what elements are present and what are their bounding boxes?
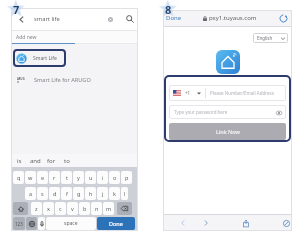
button[interactable]: Done <box>166 14 182 22</box>
button[interactable]: and <box>27 154 43 167</box>
staticText: m <box>106 205 112 212</box>
button[interactable]: is <box>11 154 27 167</box>
button[interactable]: i <box>97 171 108 184</box>
button[interactable]: 123 <box>13 217 25 230</box>
staticText: for <box>47 157 56 165</box>
staticText: h <box>89 190 93 197</box>
staticText: 123 <box>15 221 23 227</box>
staticText: Smart Life for ARUGO <box>34 76 91 84</box>
staticText: f <box>66 190 68 197</box>
staticText: w <box>28 174 33 181</box>
staticText: z <box>35 205 38 212</box>
button[interactable]: Link Now <box>169 123 286 140</box>
staticText: g <box>77 190 81 197</box>
button[interactable]: w <box>25 171 36 184</box>
staticText: smart life <box>34 15 60 23</box>
staticText: j <box>102 190 104 197</box>
staticText: a <box>29 190 33 197</box>
staticText: i <box>102 174 104 181</box>
button[interactable]: l <box>121 187 128 200</box>
button[interactable]: Show password <box>273 107 284 118</box>
staticText: d <box>53 190 57 197</box>
button[interactable]: Reload page <box>278 13 289 24</box>
button[interactable]: Voice input <box>38 217 45 230</box>
staticText: is <box>17 157 22 165</box>
button[interactable]: u <box>85 171 96 184</box>
staticText: y <box>77 174 80 181</box>
staticText: n <box>95 205 99 212</box>
button[interactable]: Clear text <box>104 13 116 25</box>
button[interactable]: j <box>97 187 108 200</box>
staticText: o <box>113 174 117 181</box>
button[interactable]: z <box>31 202 42 215</box>
button[interactable]: f <box>61 187 72 200</box>
button[interactable]: q <box>13 171 24 184</box>
staticText: k <box>113 190 116 197</box>
staticText: v <box>71 205 74 212</box>
staticText: 7 <box>13 2 20 17</box>
button[interactable]: r <box>49 171 60 184</box>
staticText: English <box>257 35 273 41</box>
button[interactable]: o <box>109 171 120 184</box>
staticText: p <box>125 174 129 181</box>
button[interactable]: space <box>46 217 96 230</box>
button[interactable]: y <box>73 171 84 184</box>
staticText: u <box>89 174 93 181</box>
button[interactable]: x <box>43 202 54 215</box>
staticText: pxy1.tuyaus.com <box>209 14 257 22</box>
staticText: to <box>64 157 70 165</box>
button[interactable]: k <box>109 187 120 200</box>
button[interactable]: Backspace <box>117 202 132 215</box>
button[interactable]: d <box>49 187 60 200</box>
button[interactable]: ARUGO <box>11 72 138 88</box>
staticText: t <box>66 174 68 181</box>
button[interactable]: h <box>85 187 96 200</box>
button[interactable]: b <box>79 202 90 215</box>
staticText: Please Number/Email Address <box>210 90 274 96</box>
button[interactable]: for <box>43 154 59 167</box>
staticText: b <box>83 205 87 212</box>
staticText: c <box>59 205 62 212</box>
button[interactable]: a <box>25 187 36 200</box>
button[interactable]: p <box>121 171 132 184</box>
button[interactable]: s <box>37 187 48 200</box>
button[interactable]: m <box>103 202 114 215</box>
button[interactable]: Shift <box>13 202 28 215</box>
staticText: Add new <box>16 34 37 41</box>
staticText: space <box>64 220 78 227</box>
button[interactable]: c <box>55 202 66 215</box>
button[interactable]: English <box>257 33 285 43</box>
button[interactable]: Search <box>124 13 136 25</box>
staticText: l <box>124 190 126 197</box>
staticText: q <box>17 174 21 181</box>
button[interactable]: g <box>73 187 84 200</box>
staticText: 8 <box>165 2 172 17</box>
button[interactable]: Back <box>176 216 190 230</box>
button[interactable]: Smart Life <box>13 49 66 67</box>
staticText: Type your password here <box>174 109 228 115</box>
staticText: s <box>41 190 44 197</box>
staticText: r <box>53 174 56 181</box>
button[interactable]: Back <box>15 13 28 26</box>
button[interactable]: v <box>67 202 78 215</box>
button[interactable]: to <box>59 154 75 167</box>
button[interactable]: t <box>61 171 72 184</box>
staticText: and <box>30 157 41 165</box>
button[interactable]: Tabs <box>280 216 292 230</box>
staticText: Smart Life <box>33 55 57 62</box>
button[interactable]: Change keyboard <box>26 217 37 230</box>
button[interactable]: Forward <box>199 216 213 230</box>
button[interactable]: n <box>91 202 102 215</box>
staticText: ARUGO <box>17 77 26 83</box>
button[interactable]: Share <box>239 216 253 230</box>
button[interactable]: e <box>37 171 48 184</box>
staticText: e <box>41 174 45 181</box>
staticText: Link Now <box>216 128 240 135</box>
staticText: +1 <box>185 90 191 96</box>
button[interactable]: Done <box>97 217 135 230</box>
staticText: Done <box>109 220 123 227</box>
staticText: x <box>47 205 50 212</box>
